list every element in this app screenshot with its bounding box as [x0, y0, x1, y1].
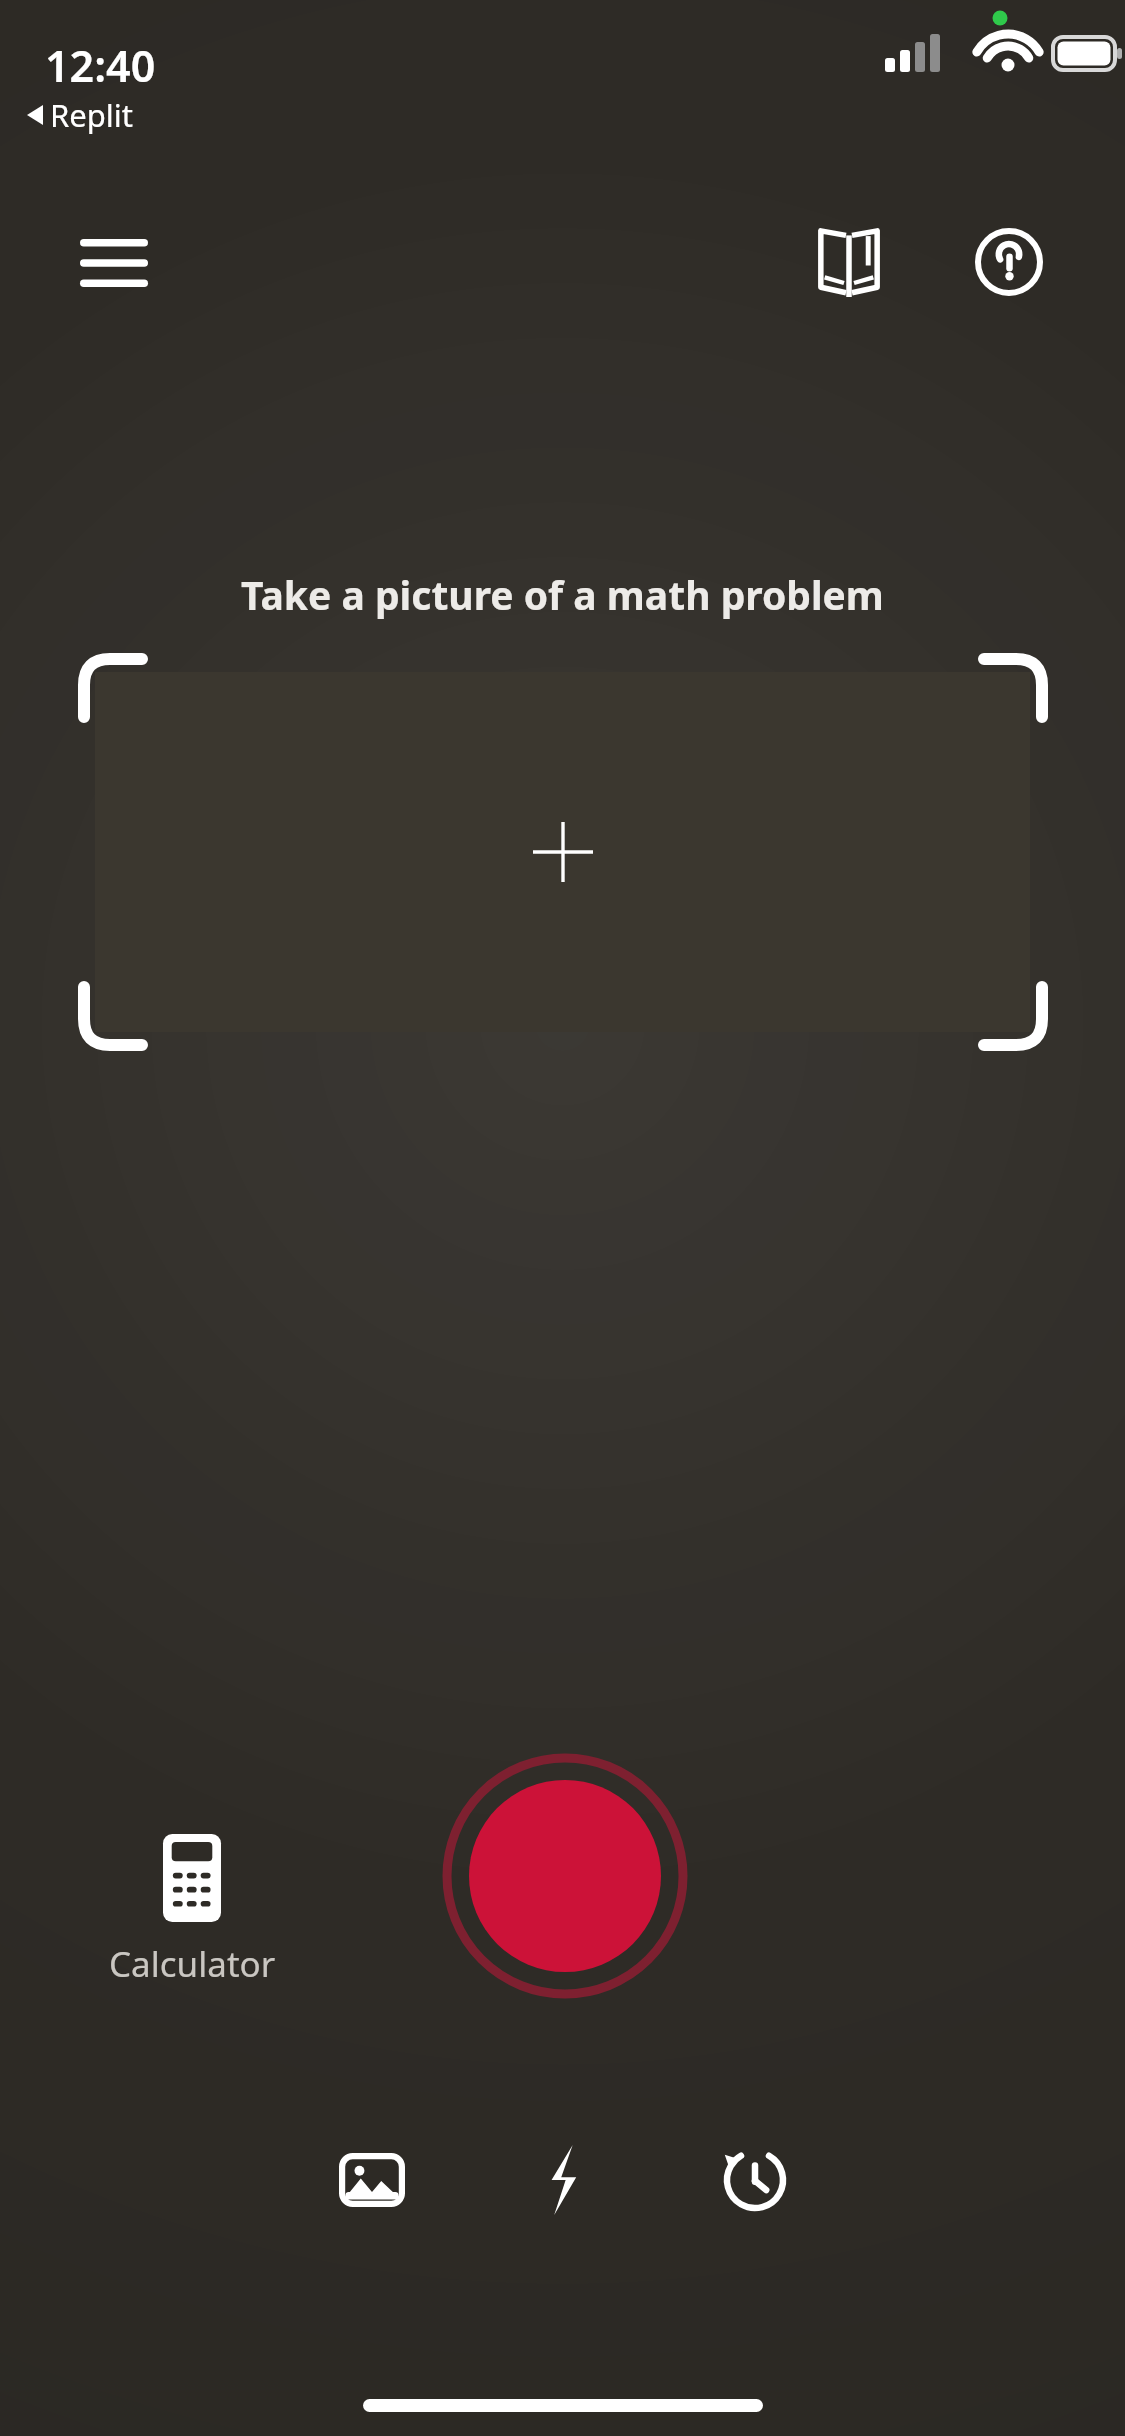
staticText: Calculator — [109, 1940, 276, 1988]
button[interactable]: Calculator — [63, 1826, 321, 1996]
button[interactable]: History — [699, 2124, 811, 2236]
staticText: Replit — [50, 94, 134, 136]
button[interactable]: Gallery — [316, 2124, 428, 2236]
button[interactable]: Guide — [793, 203, 905, 321]
staticText: Take a picture of a math problem — [0, 568, 1125, 621]
button[interactable]: Menu — [50, 207, 178, 319]
button[interactable]: Help — [953, 203, 1065, 321]
staticText: 12:40 — [45, 36, 156, 95]
button[interactable]: Take photo — [428, 1739, 702, 2013]
button[interactable]: Flash — [507, 2124, 619, 2236]
button[interactable]: Replit — [25, 92, 136, 138]
